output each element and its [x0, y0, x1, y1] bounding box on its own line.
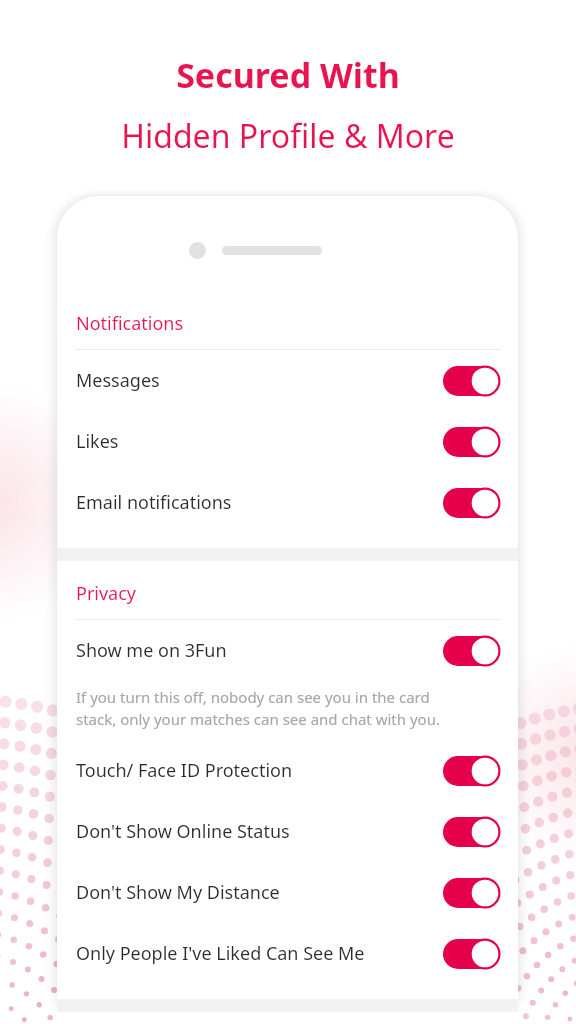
button[interactable]: Don't Show My Distance	[57, 862, 518, 923]
button[interactable]: Toggle on	[443, 817, 500, 847]
staticText: Email notifications	[76, 490, 443, 515]
button[interactable]: Toggle on	[443, 636, 500, 666]
staticText: Messages	[76, 368, 443, 393]
button[interactable]: Toggle on	[443, 427, 500, 457]
button[interactable]: Toggle on	[443, 488, 500, 518]
button[interactable]: Toggle on	[443, 366, 500, 396]
staticText: Hidden Profile & More	[0, 114, 576, 158]
staticText: Don't Show Online Status	[76, 819, 443, 844]
staticText: If you turn this off, nobody can see you…	[76, 687, 440, 730]
button[interactable]: Toggle on	[443, 939, 500, 969]
staticText: Don't Show My Distance	[76, 880, 443, 905]
button[interactable]: Don't Show Online Status	[57, 801, 518, 862]
button[interactable]: Toggle on	[443, 756, 500, 786]
staticText: Privacy	[76, 581, 137, 606]
staticText: Show me on 3Fun	[76, 638, 443, 663]
button[interactable]: Show me on 3Fun	[57, 620, 518, 681]
staticText: Touch/ Face ID Protection	[76, 758, 443, 783]
button[interactable]: Touch/ Face ID Protection	[57, 740, 518, 801]
button[interactable]: Only People I've Liked Can See Me	[57, 923, 518, 984]
staticText: Notifications	[76, 311, 184, 336]
button[interactable]: Email notifications	[57, 472, 518, 533]
button[interactable]: Likes	[57, 411, 518, 472]
staticText: Secured With	[0, 52, 576, 98]
staticText: Likes	[76, 429, 443, 454]
button[interactable]: Messages	[57, 350, 518, 411]
staticText: Only People I've Liked Can See Me	[76, 941, 443, 966]
button[interactable]: Toggle on	[443, 878, 500, 908]
